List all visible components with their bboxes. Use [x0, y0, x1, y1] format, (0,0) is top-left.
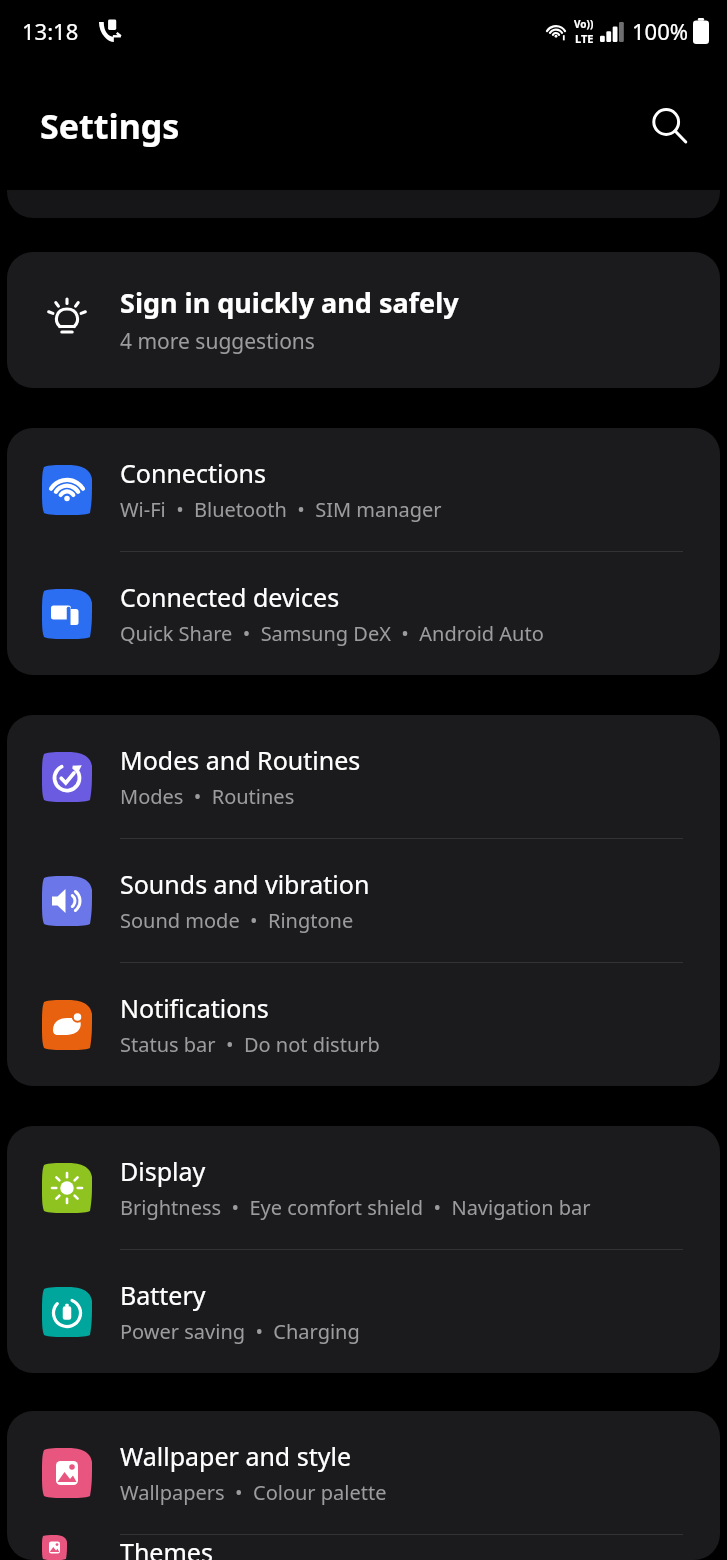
button[interactable]: Wallpaper and style	[7, 1411, 720, 1535]
button[interactable]: Connections	[7, 428, 720, 552]
staticText: Sign in quickly and safely	[120, 284, 459, 321]
staticText: Wi-Fi • Bluetooth • SIM manager	[120, 496, 442, 523]
staticText: Quick Share • Samsung DeX • Android Auto	[120, 620, 544, 647]
staticText: LTE	[575, 31, 594, 46]
staticText: Status bar • Do not disturb	[120, 1031, 380, 1058]
staticText: Modes and Routines	[120, 743, 361, 777]
staticText: Modes • Routines	[120, 783, 295, 810]
staticText: Themes	[120, 1535, 213, 1560]
staticText: 13:18	[22, 16, 79, 46]
button[interactable]: Modes and Routines	[7, 715, 720, 839]
staticText: 4 more suggestions	[120, 327, 315, 356]
button[interactable]: Search	[643, 100, 695, 152]
staticText: Wallpapers • Colour palette	[120, 1479, 387, 1506]
staticText: Settings	[40, 103, 180, 149]
button[interactable]: Themes	[7, 1535, 720, 1560]
staticText: Sound mode • Ringtone	[120, 907, 354, 934]
button[interactable]: Notifications	[7, 963, 720, 1086]
staticText: Display	[120, 1154, 206, 1188]
button[interactable]: Sounds and vibration	[7, 839, 720, 963]
button[interactable]: Sign in quickly and safely	[7, 252, 720, 388]
button[interactable]: Battery	[7, 1250, 720, 1373]
staticText: 100%	[632, 16, 689, 46]
staticText: Sounds and vibration	[120, 867, 370, 901]
staticText: Wallpaper and style	[120, 1439, 352, 1473]
button[interactable]: Connected devices	[7, 552, 720, 675]
staticText: Vo))	[574, 17, 594, 31]
staticText: Battery	[120, 1278, 206, 1312]
button[interactable]: Display	[7, 1126, 720, 1250]
staticText: Connected devices	[120, 580, 340, 614]
staticText: Notifications	[120, 991, 269, 1025]
staticText: Brightness • Eye comfort shield • Naviga…	[120, 1194, 591, 1221]
staticText: Connections	[120, 456, 266, 490]
staticText: Power saving • Charging	[120, 1318, 360, 1345]
